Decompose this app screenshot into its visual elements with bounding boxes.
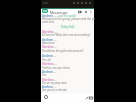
staticText: 09:30 <box>50 70 57 73</box>
button[interactable]: Camera <box>89 96 93 100</box>
staticText: I'm on my way now. <box>42 81 67 85</box>
button[interactable]: Today 9:42 <box>61 25 75 29</box>
staticText: Martina <box>42 62 54 66</box>
staticText: Today 9:42 <box>61 25 75 29</box>
staticText: Andrew <box>42 70 54 74</box>
button[interactable]: Message input <box>43 94 93 101</box>
staticText: Messenger <box>50 10 68 15</box>
button[interactable]: Attach <box>85 96 89 100</box>
staticText: 09:28 <box>50 62 57 65</box>
button[interactable]: App logo <box>42 9 48 13</box>
staticText: 09:35 <box>50 78 57 81</box>
staticText: Andrew <box>42 54 54 58</box>
staticText: see the guide <box>59 14 77 18</box>
staticText: 09:20 <box>50 45 57 48</box>
staticText: Martina <box>42 30 54 34</box>
staticText: 09:36 <box>50 85 57 88</box>
staticText: See you in a minute <box>42 88 67 92</box>
staticText: Welcome to the group, please read the pi… <box>42 17 95 21</box>
staticText: Yes <box>42 73 47 77</box>
staticText: 09:14 <box>50 30 57 33</box>
staticText: Should we bring the documents? <box>42 49 84 53</box>
button[interactable]: More options <box>89 10 93 14</box>
staticText: Yesterday <box>50 14 62 17</box>
staticText: Andrew <box>42 14 54 18</box>
button[interactable]: Video call <box>78 10 82 14</box>
staticText: 09:22 <box>50 54 57 57</box>
staticText: 09:15 <box>50 38 57 41</box>
staticText: Martina <box>42 78 54 82</box>
staticText: Perfect, see you there. <box>42 66 71 70</box>
button[interactable]: New chat <box>84 10 88 14</box>
staticText: Yes, all. <box>42 58 52 62</box>
staticText: Andrew <box>42 38 54 42</box>
staticText: I'd love to! What time are we meeting? <box>42 33 91 37</box>
staticText: Andrew <box>42 85 54 89</box>
staticText: About ten. <box>42 41 56 45</box>
staticText: Martina <box>42 45 54 49</box>
staticText: rules first. <box>42 20 55 24</box>
